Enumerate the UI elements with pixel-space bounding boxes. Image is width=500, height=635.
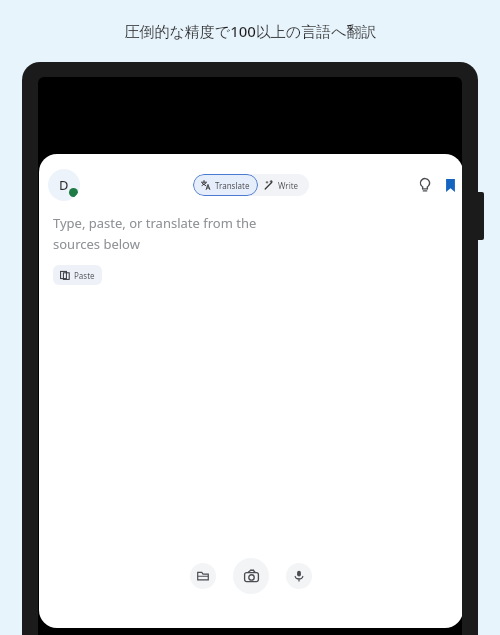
button[interactable]: Write (258, 174, 309, 196)
button[interactable]: Saved (437, 172, 462, 198)
button[interactable]: Paste (53, 265, 102, 285)
button[interactable]: Documents (190, 563, 216, 589)
button[interactable]: Account (48, 169, 80, 201)
staticText: Translate (215, 180, 250, 191)
button[interactable]: Tips (412, 172, 438, 198)
staticText: 圧倒的な精度で100以上の言語へ翻訳 (124, 21, 377, 41)
button[interactable]: Microphone (286, 563, 312, 589)
button[interactable]: Translate (193, 174, 258, 196)
staticText: Write (278, 180, 299, 191)
button[interactable]: Camera (233, 558, 269, 594)
staticText: Type, paste, or translate from the (53, 214, 257, 232)
staticText: sources below (53, 235, 140, 253)
staticText: D (59, 176, 69, 194)
staticText: Paste (74, 270, 95, 281)
